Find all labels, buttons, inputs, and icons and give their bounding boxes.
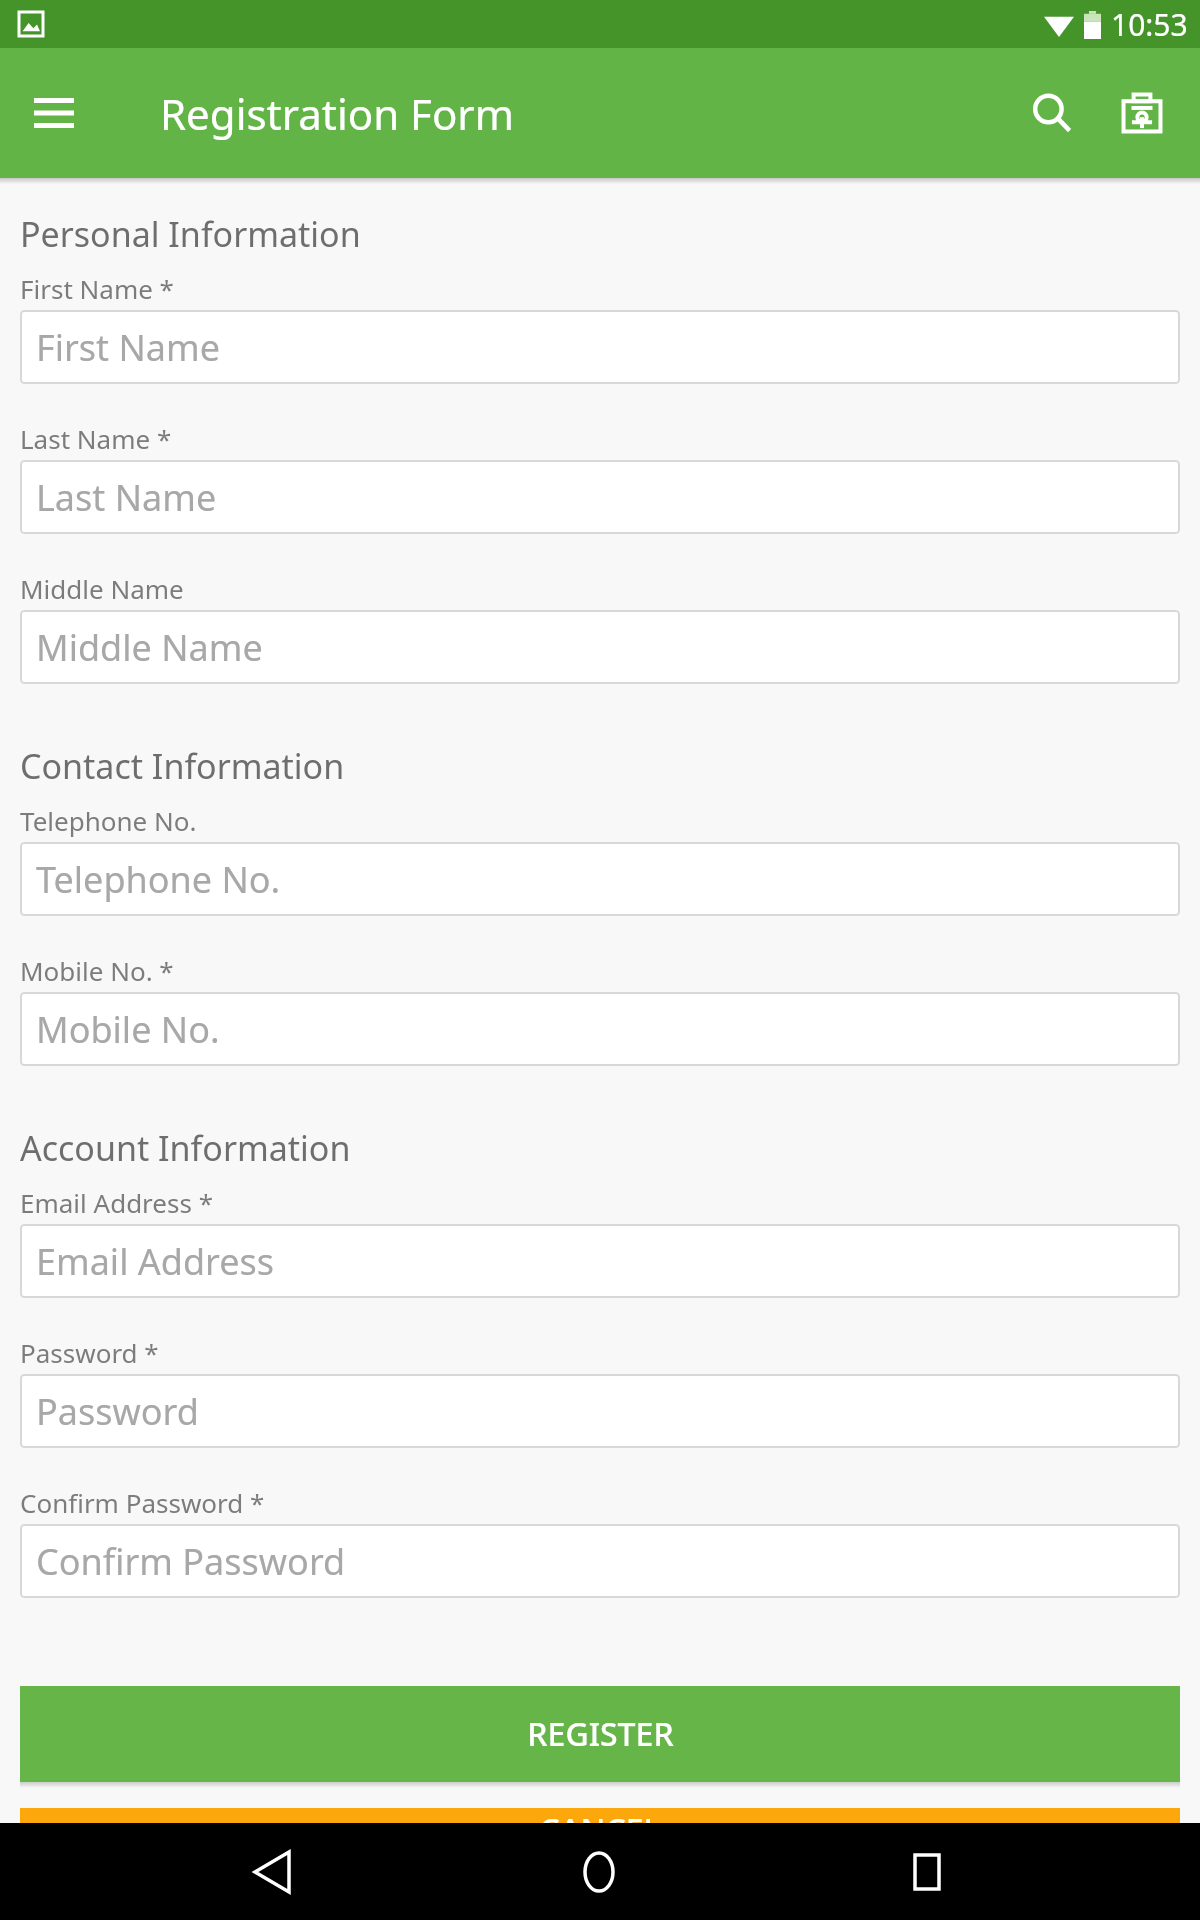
staticText: Personal Information (20, 211, 361, 257)
button[interactable]: Last Name (20, 460, 1180, 534)
button[interactable]: Middle Name (20, 610, 1180, 684)
button[interactable]: Telephone No. (20, 842, 1180, 916)
staticText: Mobile No. (36, 1005, 220, 1054)
staticText: Middle Name (36, 623, 263, 672)
staticText: Mobile No. * (20, 953, 174, 988)
button[interactable]: Password (20, 1374, 1180, 1448)
staticText: Confirm Password (36, 1537, 346, 1586)
staticText: Email Address * (20, 1185, 213, 1220)
button[interactable]: CANCEL (20, 1808, 1180, 1823)
staticText: REGISTER (527, 1712, 674, 1756)
staticText: Contact Information (20, 743, 345, 789)
staticText: Middle Name (20, 571, 184, 606)
button[interactable]: Search (1014, 75, 1090, 151)
staticText: Account Information (20, 1125, 351, 1171)
button[interactable]: Email Address (20, 1224, 1180, 1298)
button[interactable]: Recent apps (872, 1823, 982, 1920)
staticText: Telephone No. (20, 803, 197, 838)
button[interactable]: First Name (20, 310, 1180, 384)
button[interactable]: REGISTER (20, 1686, 1180, 1782)
staticText: Registration Form (160, 85, 514, 142)
staticText: CANCEL (539, 1808, 661, 1823)
staticText: First Name (36, 323, 220, 372)
staticText: Last Name (36, 473, 217, 522)
button[interactable]: Home (544, 1823, 654, 1920)
staticText: 10:53 (1111, 4, 1188, 45)
staticText: Last Name * (20, 421, 172, 456)
staticText: Confirm Password * (20, 1485, 265, 1520)
button[interactable]: Open navigation menu (26, 85, 82, 141)
staticText: Email Address (36, 1237, 275, 1286)
button[interactable]: Confirm Password (20, 1524, 1180, 1598)
button[interactable]: Work profile (1104, 75, 1180, 151)
staticText: Password * (20, 1335, 159, 1370)
button[interactable]: Mobile No. (20, 992, 1180, 1066)
staticText: Telephone No. (36, 855, 281, 904)
button[interactable]: Back (217, 1823, 327, 1920)
staticText: First Name * (20, 271, 174, 306)
staticText: Password (36, 1387, 199, 1436)
